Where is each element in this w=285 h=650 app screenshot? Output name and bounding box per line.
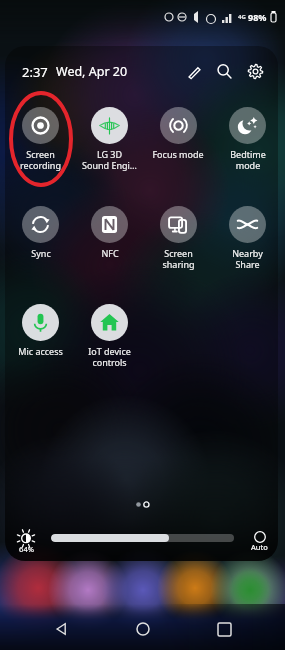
staticText: 98% [248, 11, 267, 23]
staticText: Mic access [18, 345, 63, 357]
button[interactable]: Home [123, 609, 163, 649]
button[interactable]: Brightness [16, 528, 36, 554]
staticText: 4G [238, 13, 246, 21]
button[interactable]: Search [212, 59, 237, 84]
button[interactable]: IoT device controls [77, 304, 141, 372]
button[interactable]: Back [41, 609, 81, 649]
button[interactable]: Screen sharing [146, 206, 210, 274]
staticText: Sync [31, 247, 51, 259]
staticText: Screen sharing [162, 247, 195, 270]
staticText: Auto [251, 542, 268, 552]
button[interactable]: Screen recording [8, 107, 72, 175]
button[interactable]: Bedtime mode [215, 107, 279, 175]
button[interactable]: Nearby Share [215, 206, 279, 274]
button[interactable]: LG 3D Sound Engi… [77, 107, 141, 175]
button[interactable]: Settings [243, 59, 268, 84]
staticText: IoT device controls [88, 345, 131, 368]
staticText: 64% [19, 544, 34, 554]
staticText: Bedtime mode [230, 148, 266, 171]
staticText: NFC [101, 247, 119, 259]
button[interactable]: Edit [182, 59, 207, 84]
button[interactable]: Sync [8, 206, 72, 274]
staticText: Screen recording [20, 148, 61, 171]
staticText: LG 3D Sound Engi… [82, 148, 137, 171]
button[interactable]: NFC [77, 206, 141, 274]
button[interactable]: Focus mode [146, 107, 210, 175]
button[interactable]: Brightness slider [51, 534, 234, 542]
staticText: Wed, Apr 20 [56, 63, 128, 80]
staticText: Focus mode [152, 148, 204, 160]
button[interactable]: 2:37 [22, 59, 128, 84]
staticText: Nearby Share [232, 247, 263, 270]
staticText: 2:37 [22, 63, 48, 81]
button[interactable]: Recents [204, 609, 244, 649]
button[interactable]: Auto [245, 528, 273, 554]
button[interactable]: Mic access [8, 304, 72, 372]
